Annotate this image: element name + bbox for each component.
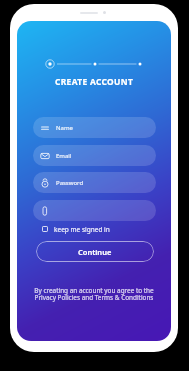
staticText: Continue [78,247,112,257]
button[interactable]: Email [33,145,156,166]
staticText: CREATE ACCOUNT [55,76,134,87]
other: Name [40,123,50,133]
button[interactable]: Phone [33,200,156,221]
staticText: keep me signed in [54,225,110,234]
other: Email [40,151,50,161]
button[interactable]: Name [33,117,156,138]
staticText: Name [56,124,73,132]
staticText: By creating an account you agree to the … [34,286,154,302]
button[interactable]: keep me signed in [42,223,132,235]
button[interactable]: Continue [36,241,154,262]
staticText: Password [56,179,84,187]
button[interactable]: Password [33,172,156,193]
other: Password [40,178,50,188]
other: Phone [40,206,50,216]
staticText: Email [56,152,72,160]
